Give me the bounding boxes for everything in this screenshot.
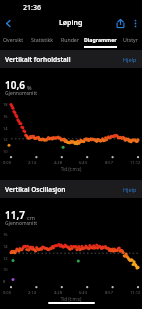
staticText: 4:28 [54,160,62,165]
staticText: 12 [3,137,8,142]
staticText: Hjelp [123,56,137,63]
staticText: 14 [3,126,8,131]
staticText: 16 [3,114,8,119]
staticText: Tid (t:m:s) [0,296,142,302]
staticText: Gjennomsnitt [5,220,38,227]
staticText: 8:57 [105,160,113,165]
staticText: Statistikk [31,36,54,43]
staticText: % [27,84,32,91]
staticText: 6:43 [79,290,87,295]
staticText: 2:14 [28,290,36,295]
button[interactable]: Hjelp [99,56,142,63]
staticText: 4:28 [54,290,62,295]
button[interactable]: Statistikk [27,32,57,48]
staticText: 10 [3,267,8,272]
staticText: Utstyr [123,36,138,43]
staticText: 12 [3,256,8,261]
staticText: 0:00 [3,290,11,295]
staticText: Tid (t:m:s) [0,166,142,172]
staticText: Gjennomsnitt [5,90,38,97]
staticText: 14 [3,244,8,249]
staticText: 11:12 [130,290,141,295]
staticText: Oversikt [3,36,24,43]
button[interactable]: Share [112,15,128,31]
button[interactable]: Hjelp [99,186,142,193]
staticText: 10,6 [5,78,25,92]
staticText: 2:14 [28,160,36,165]
staticText: cm [27,214,35,221]
staticText: 11,7 [5,208,25,222]
staticText: Løping [59,18,83,28]
staticText: 8:57 [105,290,113,295]
staticText: 18 [3,102,8,107]
staticText: 11:12 [130,160,141,165]
staticText: 10 [3,149,8,154]
staticText: Diagrammer [84,36,117,43]
staticText: 6:43 [79,160,87,165]
staticText: 8 [3,279,6,284]
staticText: Hjelp [123,186,137,193]
staticText: Vertikal Oscillasjon [5,185,66,194]
staticText: Vertikalt forholdstall [5,55,71,64]
button[interactable]: Oversikt [0,32,27,48]
button[interactable]: More options [128,16,142,30]
button[interactable]: Utstyr [119,32,142,48]
staticText: 16 [3,232,8,237]
button[interactable]: Runder [57,32,82,48]
button[interactable]: Diagrammer [82,32,119,48]
button[interactable]: Back [0,15,16,31]
staticText: 21:36 [23,3,41,13]
staticText: 0:00 [3,160,11,165]
staticText: Runder [61,36,79,43]
